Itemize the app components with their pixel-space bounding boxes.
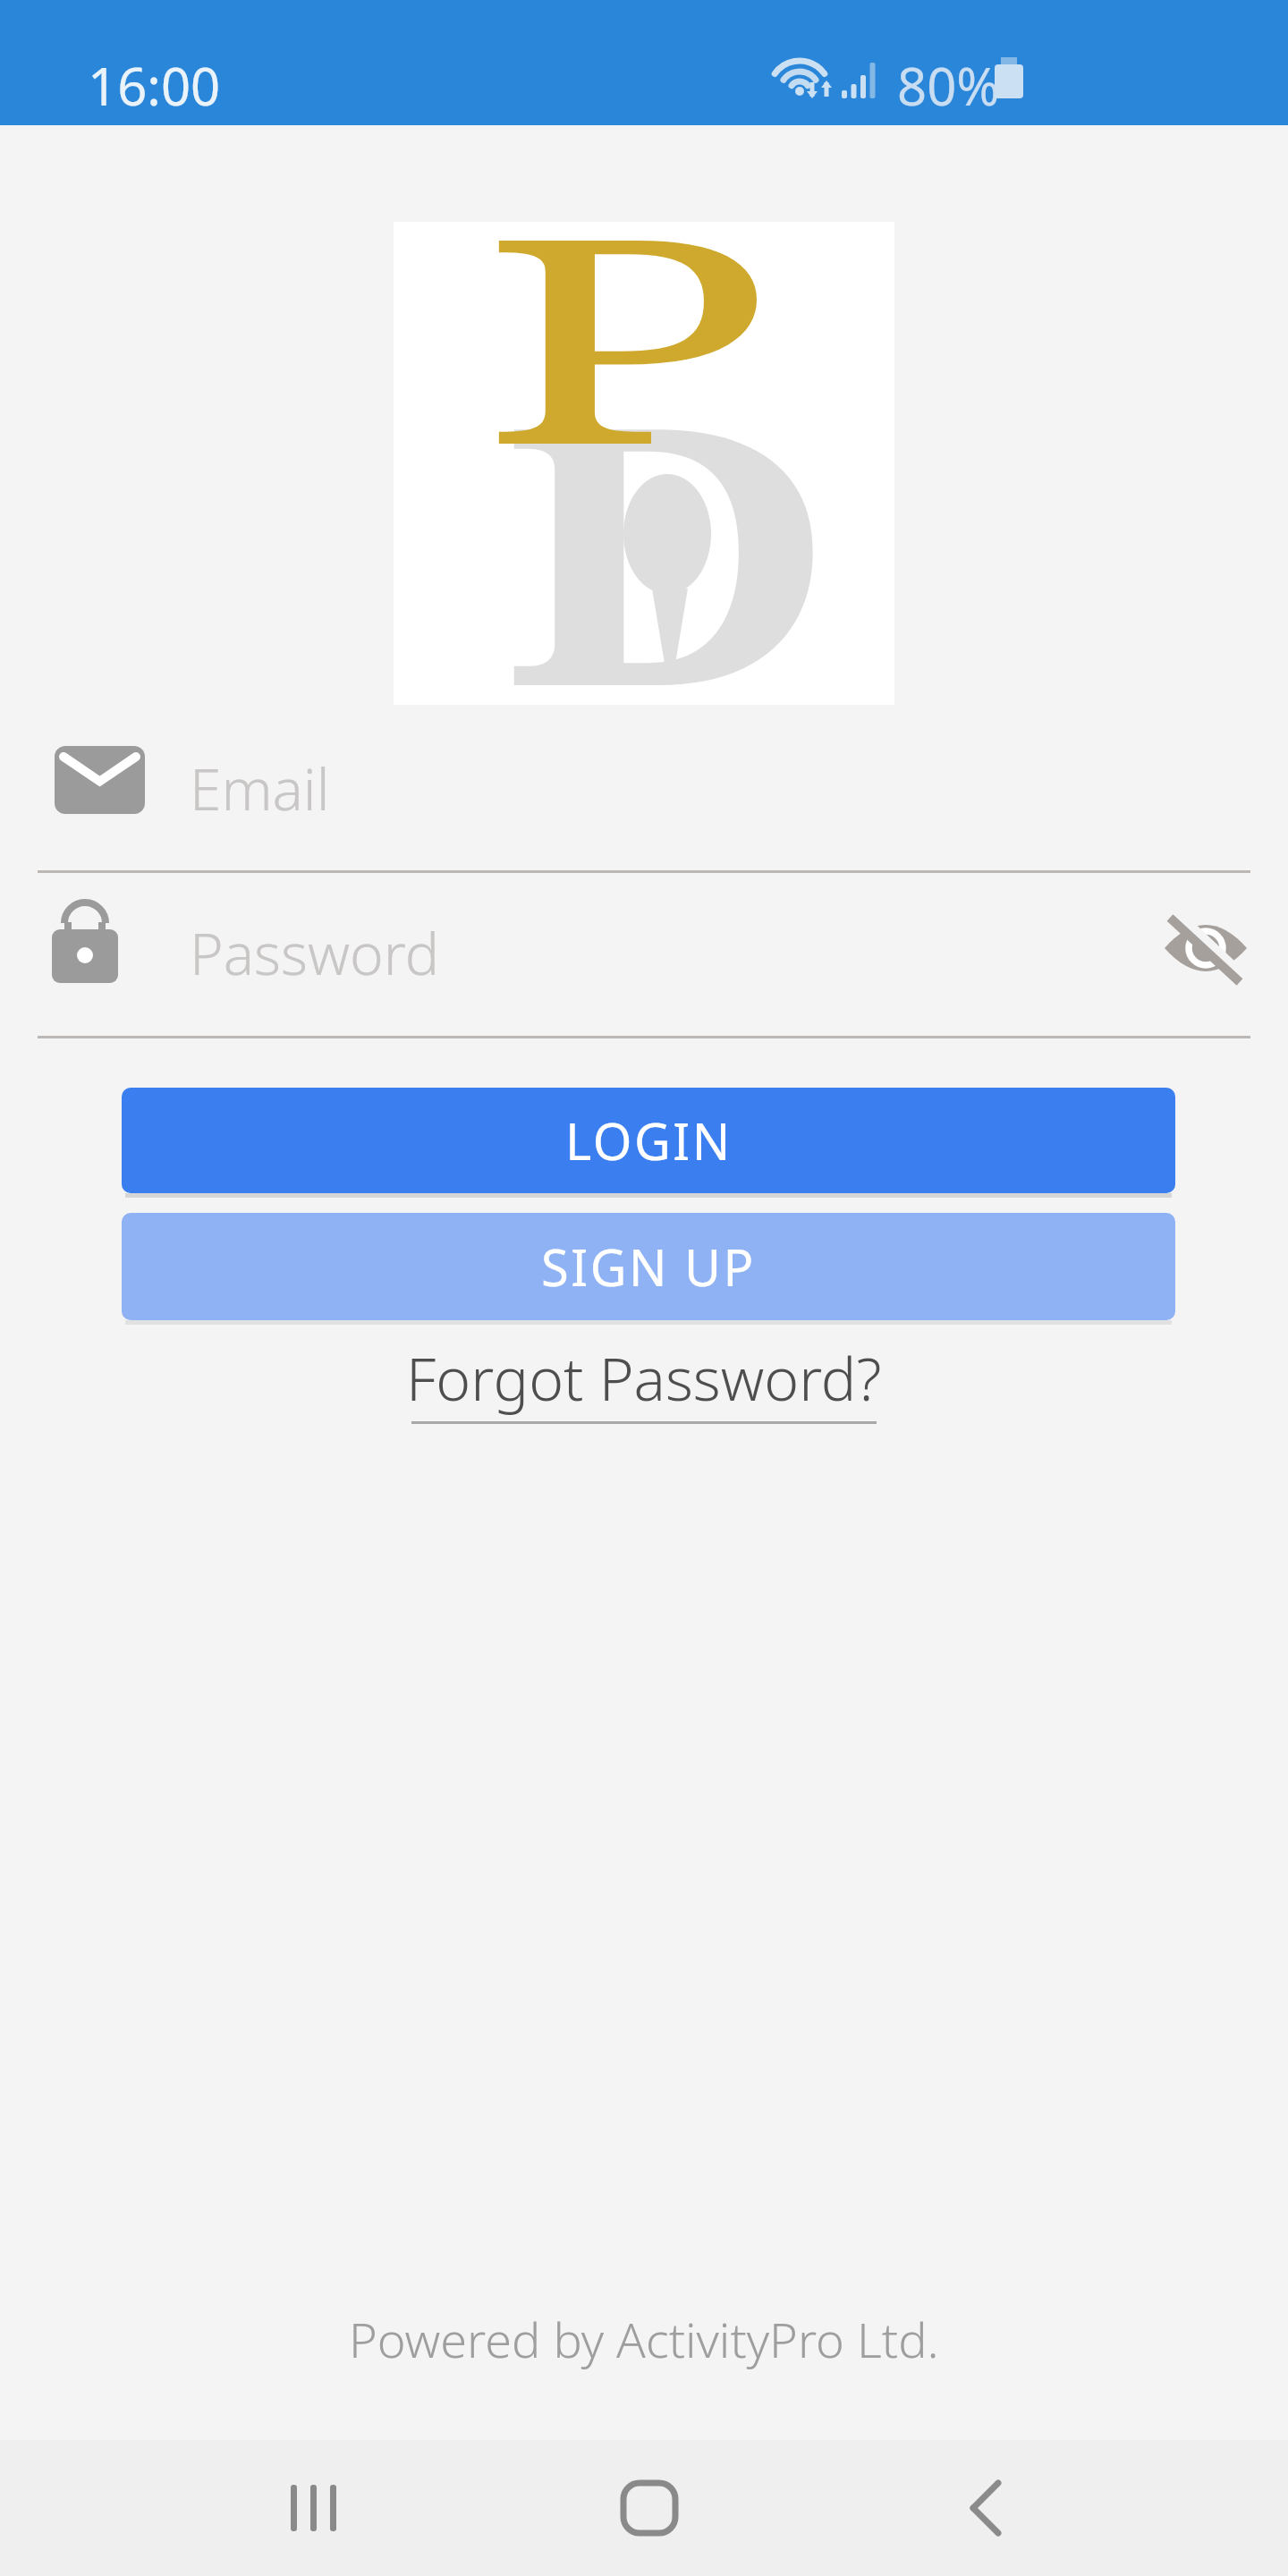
staticText: P xyxy=(480,140,777,527)
button[interactable] xyxy=(38,732,1250,870)
staticText: 80% xyxy=(897,50,1000,121)
staticText: SIGN UP xyxy=(541,1233,756,1301)
staticText: Password xyxy=(190,914,439,992)
button[interactable] xyxy=(905,2440,1066,2576)
staticText: Email xyxy=(190,750,330,827)
button[interactable]: SIGN UP xyxy=(122,1213,1175,1320)
button[interactable]: LOGIN xyxy=(122,1088,1175,1193)
staticText: D xyxy=(502,302,837,785)
staticText: 16:00 xyxy=(88,50,221,121)
staticText: Powered by ActivityPro Ltd. xyxy=(349,2306,939,2372)
button[interactable]: Forgot Password? xyxy=(0,1337,1288,1424)
staticText: LOGIN xyxy=(565,1106,733,1174)
button[interactable] xyxy=(1147,898,1265,998)
button[interactable] xyxy=(233,2440,394,2576)
button[interactable] xyxy=(569,2440,730,2576)
button[interactable] xyxy=(38,890,1129,1036)
staticText: Forgot Password? xyxy=(406,1337,882,1418)
